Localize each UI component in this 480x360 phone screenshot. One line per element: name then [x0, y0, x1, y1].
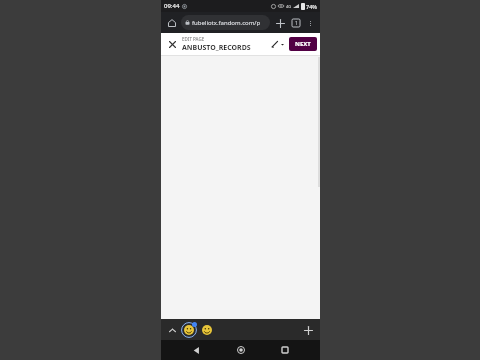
button[interactable]: Close — [165, 37, 179, 51]
button[interactable]: Editing mode — [268, 36, 287, 52]
button[interactable]: Emoji — [200, 323, 214, 337]
staticText: fubeliotx.fandom.com/p — [192, 19, 261, 27]
staticText: 4G — [286, 4, 292, 9]
button[interactable]: Add — [300, 322, 316, 338]
staticText: 1 — [295, 20, 298, 27]
staticText: 09:44 — [164, 2, 180, 10]
button[interactable]: NEXT — [289, 37, 317, 51]
staticText: EDIT PAGE — [182, 36, 205, 42]
staticText: ANBUSTO_RECORDS — [182, 43, 251, 53]
button[interactable]: Switch tabs — [289, 16, 303, 30]
button[interactable]: New tab — [273, 16, 287, 30]
staticText: NEXT — [295, 40, 311, 48]
button[interactable]: Recent apps — [276, 341, 294, 359]
staticText: 74% — [306, 3, 317, 10]
button[interactable]: Home — [165, 16, 179, 30]
button[interactable]: Collapse keyboard — [165, 323, 179, 337]
button[interactable]: fubeliotx.fandom.com/p — [181, 15, 270, 30]
button[interactable]: More options — [304, 17, 316, 29]
button[interactable]: Home — [232, 341, 250, 359]
button[interactable]: Recent emoji — [181, 322, 197, 338]
button[interactable]: Back — [187, 341, 205, 359]
